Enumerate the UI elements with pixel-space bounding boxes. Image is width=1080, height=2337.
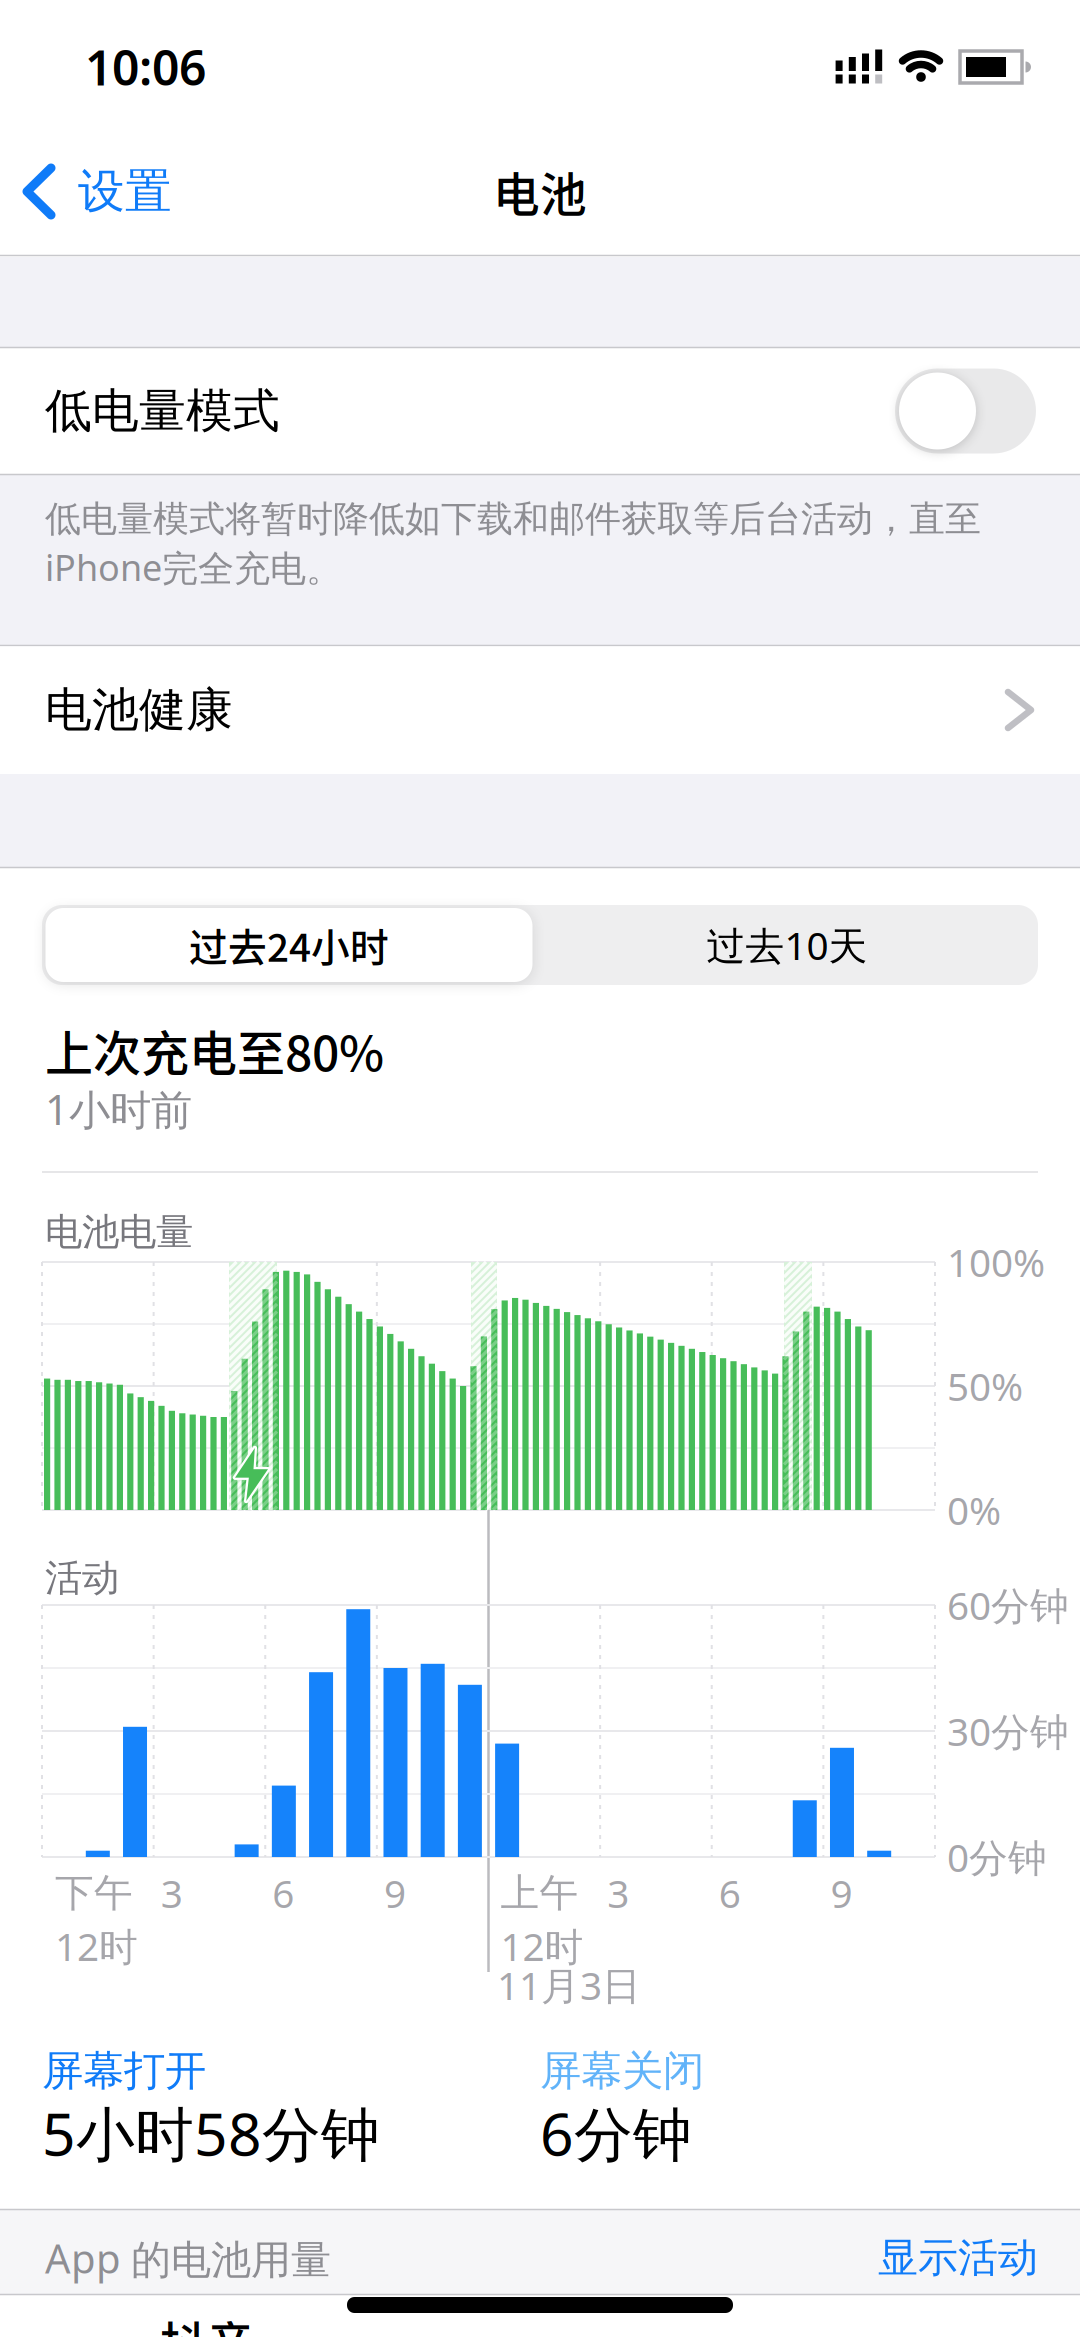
staticText: 5小时58分钟 <box>42 2094 380 2172</box>
staticText: 上次充电至80% <box>45 1015 384 1085</box>
staticText: 设置 <box>78 163 172 220</box>
staticText: 30分钟 <box>947 1705 1069 1757</box>
button[interactable]: 过去24小时 <box>42 905 535 985</box>
staticText: 3 <box>607 1867 629 1919</box>
staticText: 屏幕打开 <box>42 2046 206 2096</box>
staticText: 50% <box>947 1360 1023 1412</box>
button[interactable]: 显示活动 <box>738 2233 1038 2282</box>
staticText: 抖音 <box>160 2307 254 2337</box>
staticText: 6 <box>719 1867 741 1919</box>
staticText: 0% <box>947 1484 1001 1536</box>
staticText: 11月3日 <box>497 1959 641 2011</box>
staticText: 6分钟 <box>540 2094 692 2172</box>
staticText: 电池健康 <box>45 681 233 739</box>
staticText: 10:06 <box>85 35 206 99</box>
staticText: 0分钟 <box>947 1831 1047 1883</box>
staticText: 活动 <box>45 1555 119 1601</box>
staticText: 6 <box>272 1867 294 1919</box>
staticText: 屏幕关闭 <box>540 2046 704 2096</box>
staticText: 低电量模式 <box>45 382 280 440</box>
staticText: App 的电池用量 <box>45 2231 331 2285</box>
button[interactable]: 设置 <box>15 146 215 237</box>
staticText: 1小时前 <box>45 1082 192 1136</box>
button[interactable]: 过去10天 <box>538 905 1035 985</box>
staticText: 电池 <box>493 158 587 225</box>
staticText: 12时 <box>55 1920 138 1972</box>
staticText: 3 <box>161 1867 183 1919</box>
staticText: 100% <box>947 1236 1045 1288</box>
staticText: 电池电量 <box>45 1209 193 1255</box>
staticText: 低电量模式将暂时降低如下载和邮件获取等后台活动，直至 <box>45 497 981 541</box>
staticText: 12时 <box>500 1920 583 1972</box>
staticText: 60分钟 <box>947 1579 1069 1631</box>
button[interactable]: 电池健康 <box>0 646 1080 773</box>
staticText: 显示活动 <box>878 2233 1038 2282</box>
staticText: iPhone完全充电。 <box>45 543 342 591</box>
staticText: 上午 <box>500 1869 578 1917</box>
staticText: 过去24小时 <box>189 917 389 973</box>
staticText: 过去10天 <box>706 919 867 971</box>
staticText: 9 <box>384 1867 406 1919</box>
button[interactable] <box>895 368 1036 453</box>
staticText: 9 <box>830 1867 852 1919</box>
staticText: 下午 <box>55 1869 133 1917</box>
